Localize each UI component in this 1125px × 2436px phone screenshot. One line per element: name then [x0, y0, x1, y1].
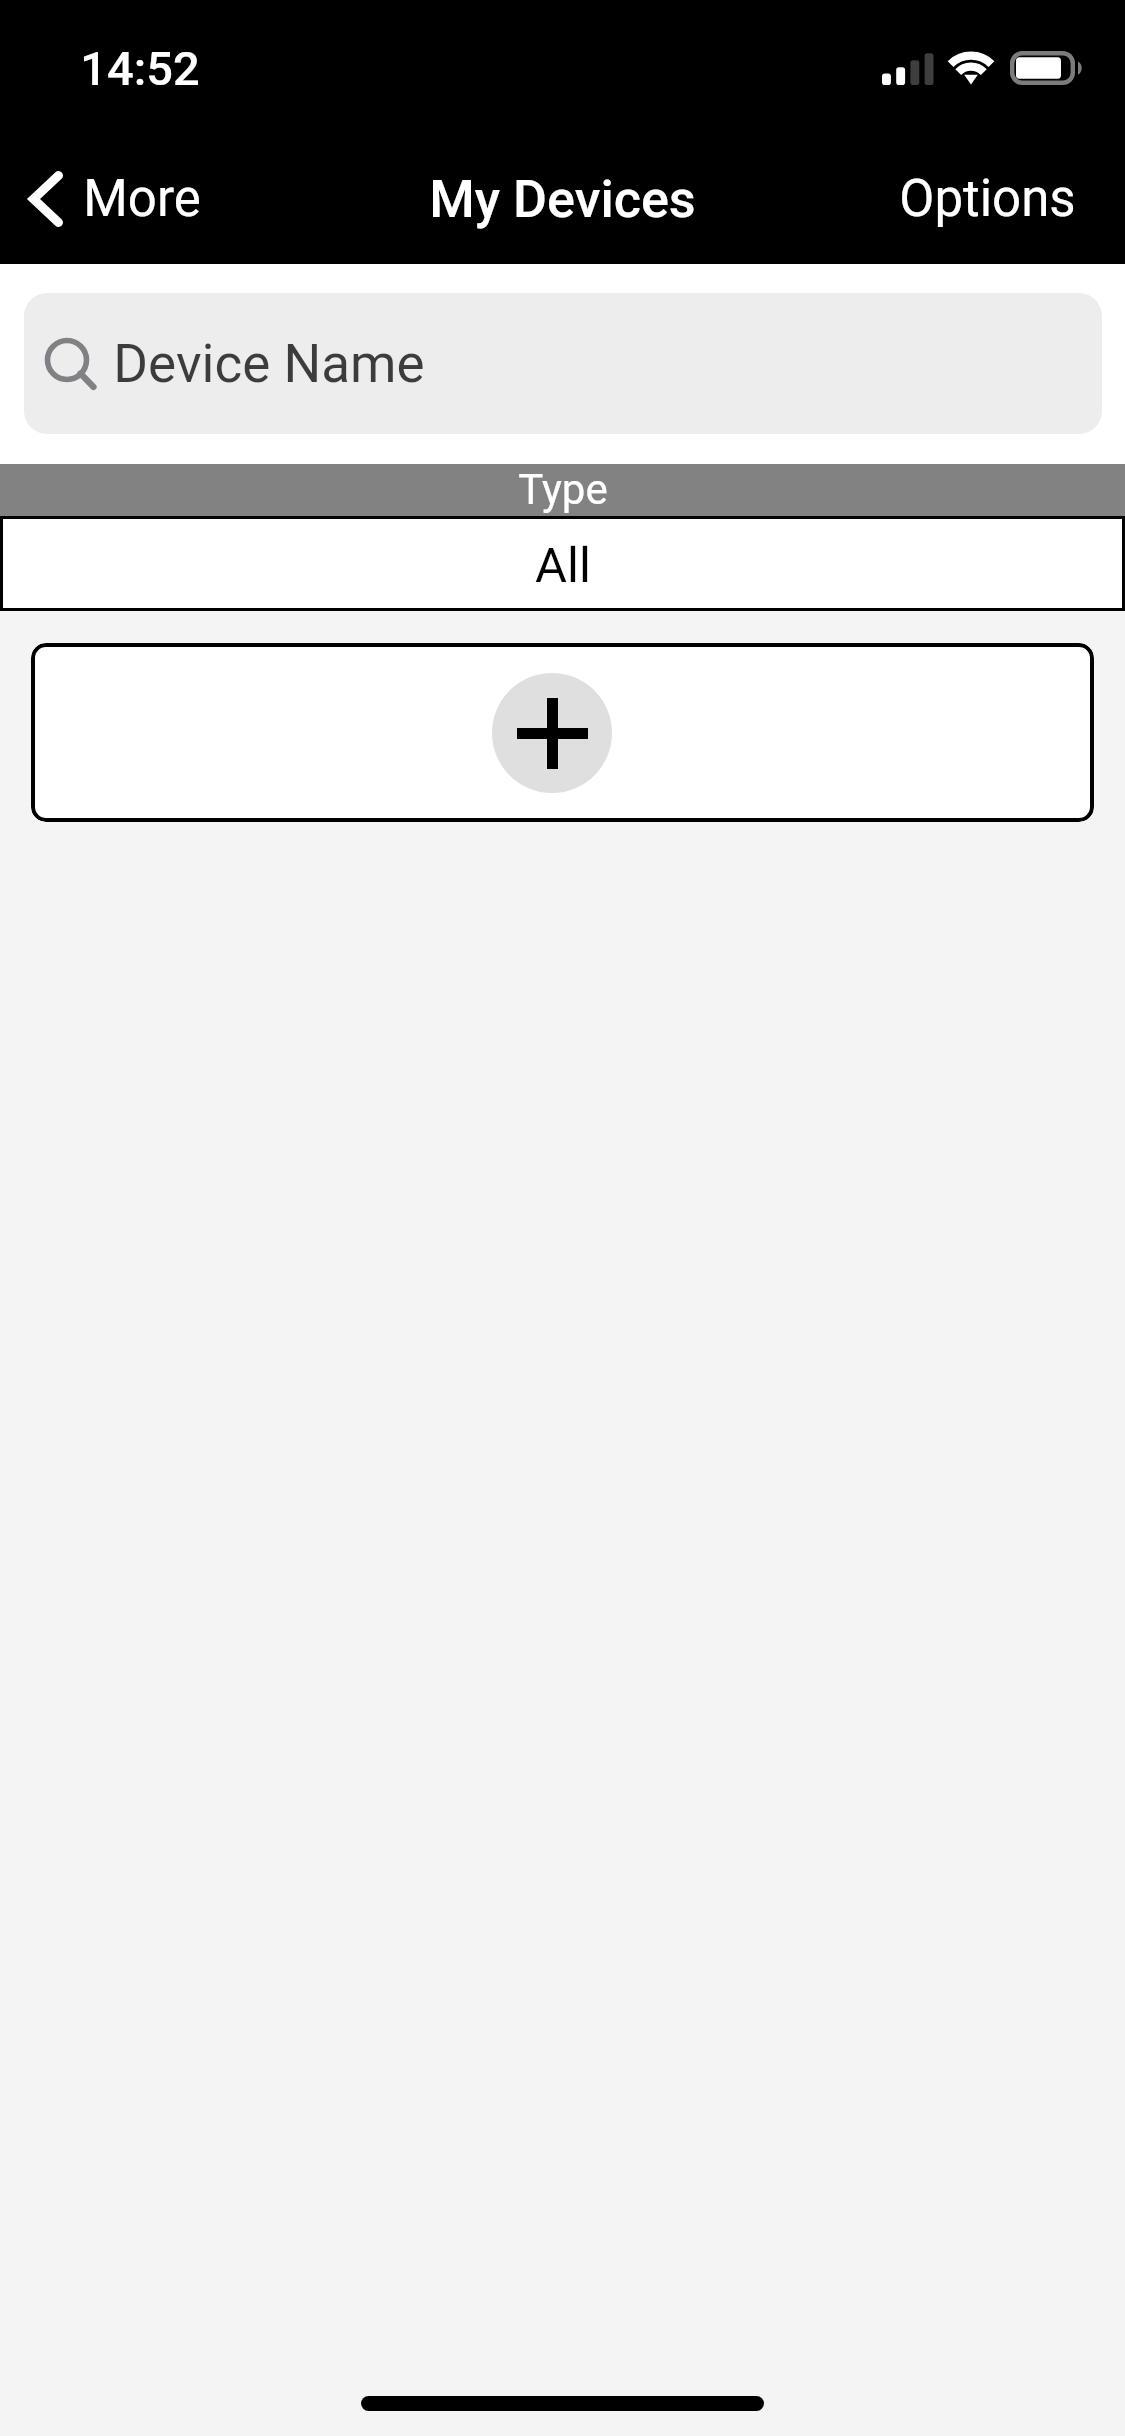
staticText: Options [899, 169, 1076, 229]
button[interactable]: More [0, 157, 225, 241]
staticText: 14:52 [80, 41, 200, 96]
staticText: My Devices [429, 169, 696, 230]
button[interactable]: Options [850, 157, 1125, 241]
staticText: Type [518, 465, 608, 514]
staticText: More [83, 169, 201, 229]
staticText: All [535, 537, 591, 594]
button[interactable]: Device Name [24, 293, 1102, 434]
staticText: Device Name [113, 333, 425, 395]
button[interactable]: All [0, 516, 1125, 611]
button[interactable]: Add device [31, 643, 1094, 822]
